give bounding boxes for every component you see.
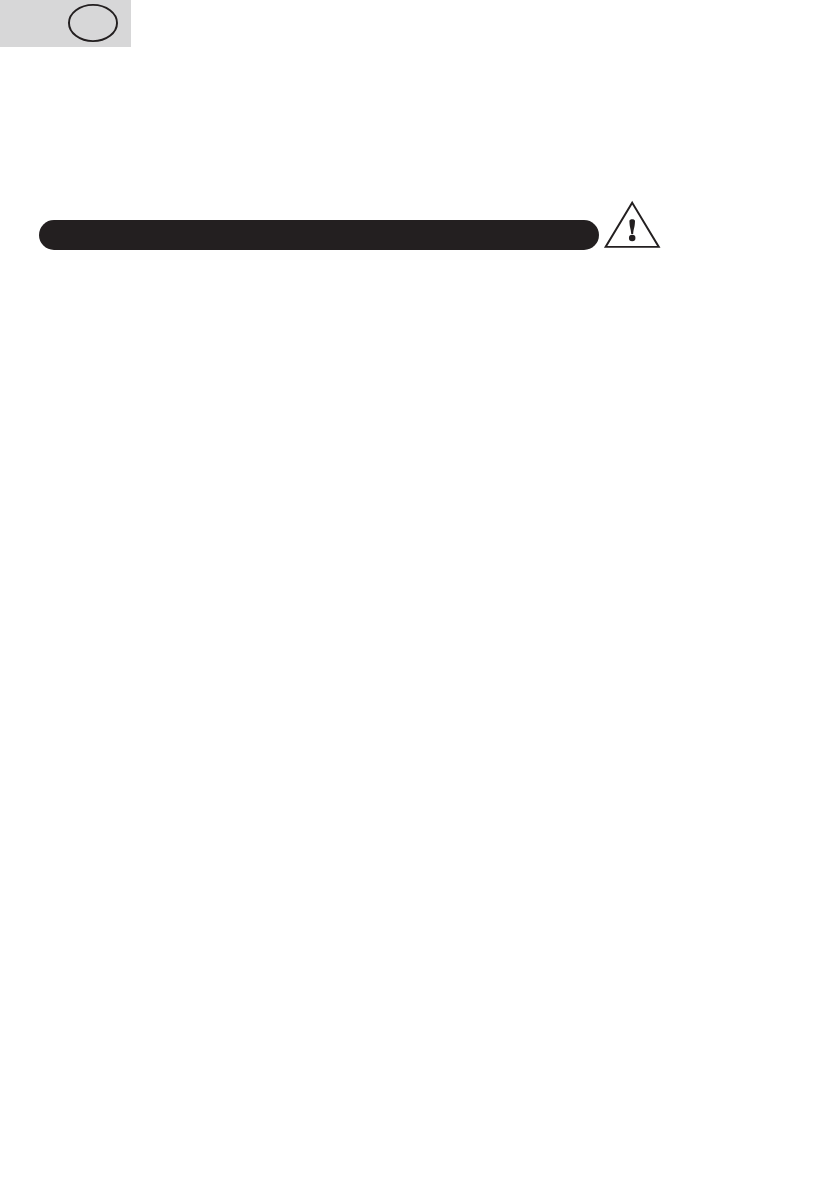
- button[interactable]: Warning: [600, 195, 666, 255]
- button[interactable]: Heading bar: [39, 220, 599, 250]
- button[interactable]: Section marker: [0, 0, 131, 47]
